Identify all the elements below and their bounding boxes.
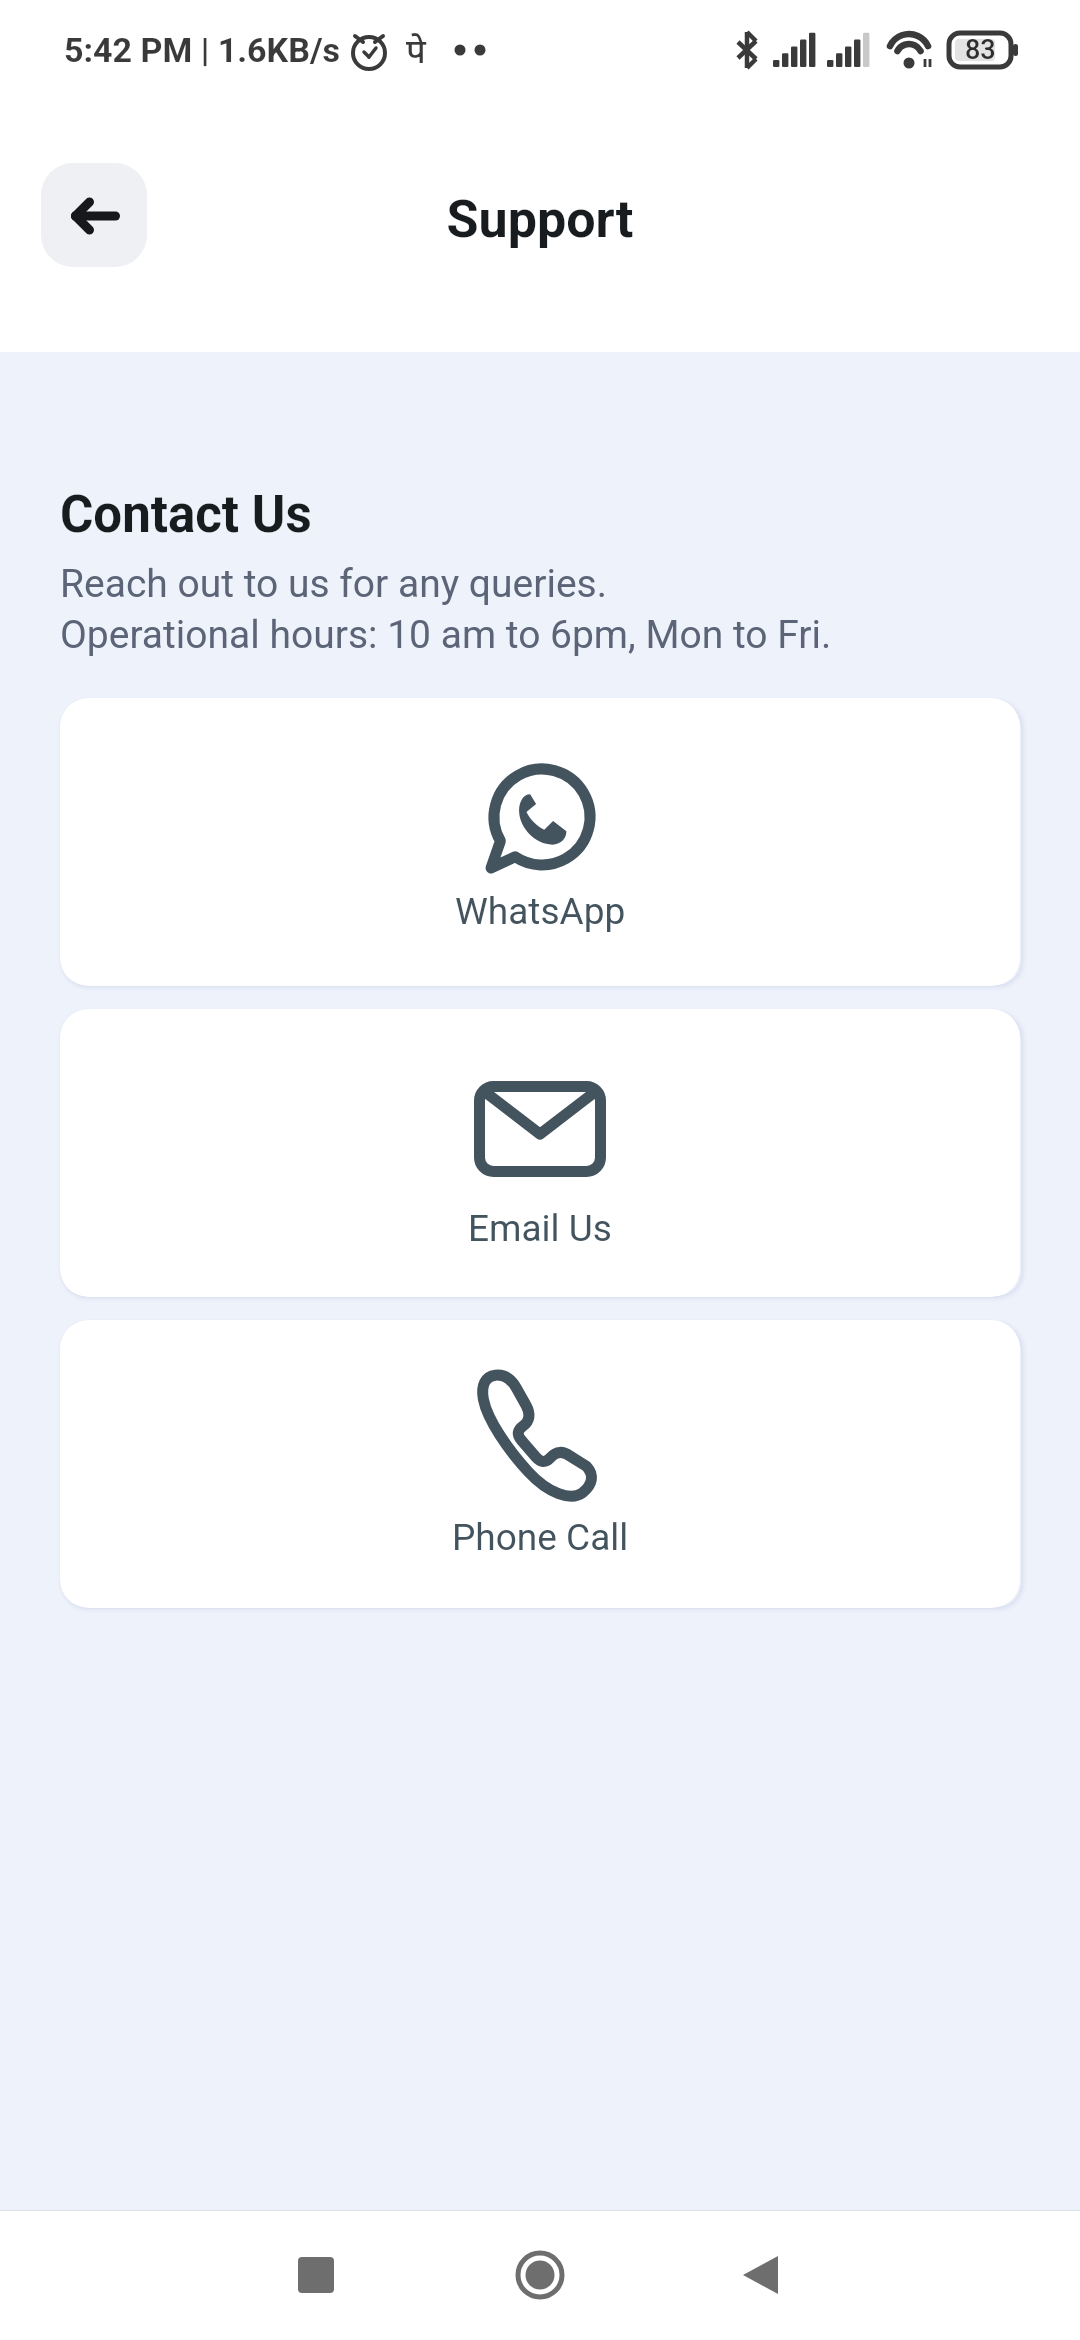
staticText: 5:42 PM | 1.6KB/s bbox=[64, 30, 340, 70]
staticText: पे bbox=[406, 27, 426, 73]
button[interactable]: Phone Call bbox=[60, 1320, 1020, 1608]
button[interactable]: Recents bbox=[220, 2210, 420, 2340]
staticText: 83 bbox=[965, 34, 996, 66]
staticText: Contact Us bbox=[60, 485, 312, 545]
button[interactable]: Email Us bbox=[60, 1009, 1020, 1297]
button[interactable]: Back bbox=[41, 163, 147, 267]
staticText: Reach out to us for any queries. Operati… bbox=[60, 561, 832, 657]
button[interactable]: WhatsApp bbox=[60, 698, 1020, 986]
button[interactable]: Back bbox=[660, 2210, 860, 2340]
staticText: Email Us bbox=[468, 1207, 612, 1250]
staticText: WhatsApp bbox=[455, 890, 626, 933]
staticText: Support bbox=[0, 189, 1080, 250]
staticText: Phone Call bbox=[452, 1516, 629, 1559]
button[interactable]: Home bbox=[420, 2210, 660, 2340]
